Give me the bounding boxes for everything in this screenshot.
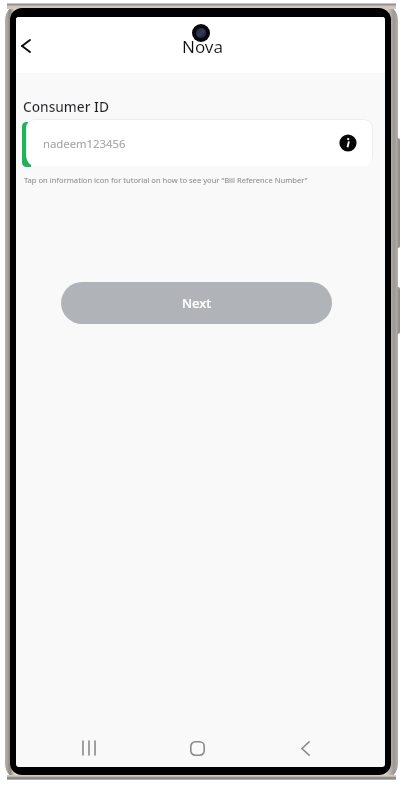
button[interactable]: Back xyxy=(16,26,46,66)
staticText: Consumer ID xyxy=(23,97,109,116)
button[interactable]: Home xyxy=(179,730,215,766)
staticText: Nova xyxy=(182,35,224,58)
staticText: nadeem123456 xyxy=(43,136,126,151)
button[interactable]: Recent apps xyxy=(71,730,107,766)
button[interactable]: Information xyxy=(336,131,360,155)
button[interactable]: Back xyxy=(287,730,323,766)
staticText: Tap on information icon for tutorial on … xyxy=(24,175,308,185)
button[interactable]: Next xyxy=(61,282,332,324)
button[interactable]: nadeem123456 xyxy=(27,120,372,166)
staticText: Next xyxy=(182,294,212,312)
